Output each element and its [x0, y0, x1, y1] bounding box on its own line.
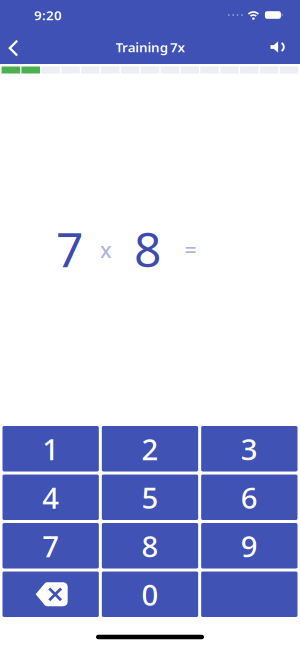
button[interactable]: Back: [0, 30, 21, 63]
button[interactable]: Sound: [270, 33, 300, 61]
staticText: 3: [241, 429, 258, 468]
button[interactable]: 9: [201, 523, 297, 568]
button[interactable]: 1: [2, 426, 99, 471]
staticText: 7: [42, 526, 59, 565]
staticText: 6: [241, 478, 258, 517]
staticText: x: [100, 236, 112, 264]
button[interactable]: Delete: [2, 571, 99, 617]
button[interactable]: 7: [2, 523, 99, 568]
button[interactable]: 5: [102, 474, 198, 520]
button[interactable]: 4: [2, 474, 99, 520]
button[interactable]: 0: [102, 571, 198, 617]
staticText: 5: [141, 478, 158, 517]
button[interactable]: 8: [102, 523, 198, 568]
staticText: 0: [141, 575, 158, 614]
button[interactable]: 6: [201, 474, 297, 520]
staticText: 8: [134, 217, 161, 280]
button[interactable]: 2: [102, 426, 198, 471]
staticText: 1: [42, 429, 59, 468]
staticText: =: [184, 236, 196, 264]
button[interactable]: 3: [201, 426, 297, 471]
staticText: Training 7x: [115, 38, 184, 56]
staticText: 8: [141, 526, 158, 565]
staticText: 7: [56, 217, 83, 280]
staticText: 4: [42, 478, 59, 517]
staticText: 9:20: [34, 6, 62, 24]
staticText: 9: [241, 526, 258, 565]
staticText: 2: [141, 429, 158, 468]
